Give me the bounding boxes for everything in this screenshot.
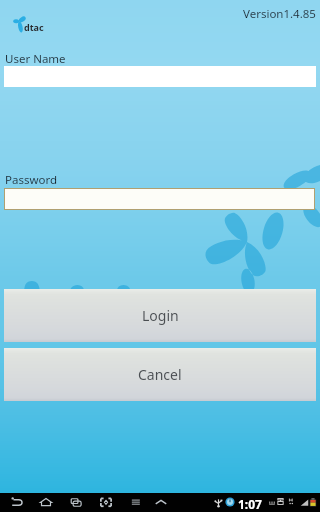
button[interactable]: Home xyxy=(38,494,54,511)
staticText: Password xyxy=(5,172,58,188)
staticText: Cancel xyxy=(138,365,182,384)
staticText: 1:07 xyxy=(238,496,262,512)
button[interactable]: Login xyxy=(4,289,316,342)
button[interactable]: Screenshot xyxy=(98,494,114,511)
button[interactable]: Menu xyxy=(128,494,144,511)
staticText: Version1.4.85 xyxy=(243,6,316,22)
button[interactable]: Cancel xyxy=(4,348,316,401)
button[interactable]: Recent apps xyxy=(68,494,84,511)
staticText: Login xyxy=(142,306,179,325)
staticText: User Name xyxy=(5,51,66,67)
staticText: dtac xyxy=(24,21,44,33)
button[interactable]: Expand xyxy=(153,494,169,511)
button[interactable]: Back xyxy=(9,494,25,511)
